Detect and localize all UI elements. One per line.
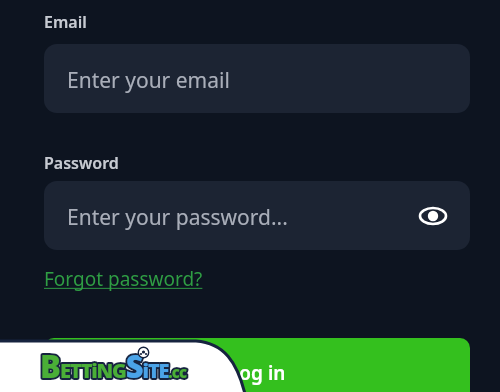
staticText: Enter your email	[67, 66, 230, 95]
staticText: Log in	[229, 360, 286, 386]
staticText: Password	[44, 152, 119, 174]
staticText: Enter your password...	[67, 203, 288, 232]
button[interactable]: Log in	[44, 338, 470, 392]
button[interactable]: Enter your password...	[44, 181, 470, 250]
button[interactable]: Enter your email	[44, 44, 470, 113]
staticText: BETTiNGSiTE.cc	[40, 345, 187, 387]
staticText: BETTiNGSiTE.cc	[40, 345, 187, 387]
staticText: Email	[44, 11, 87, 33]
button[interactable]: Forgot password?	[44, 266, 203, 292]
